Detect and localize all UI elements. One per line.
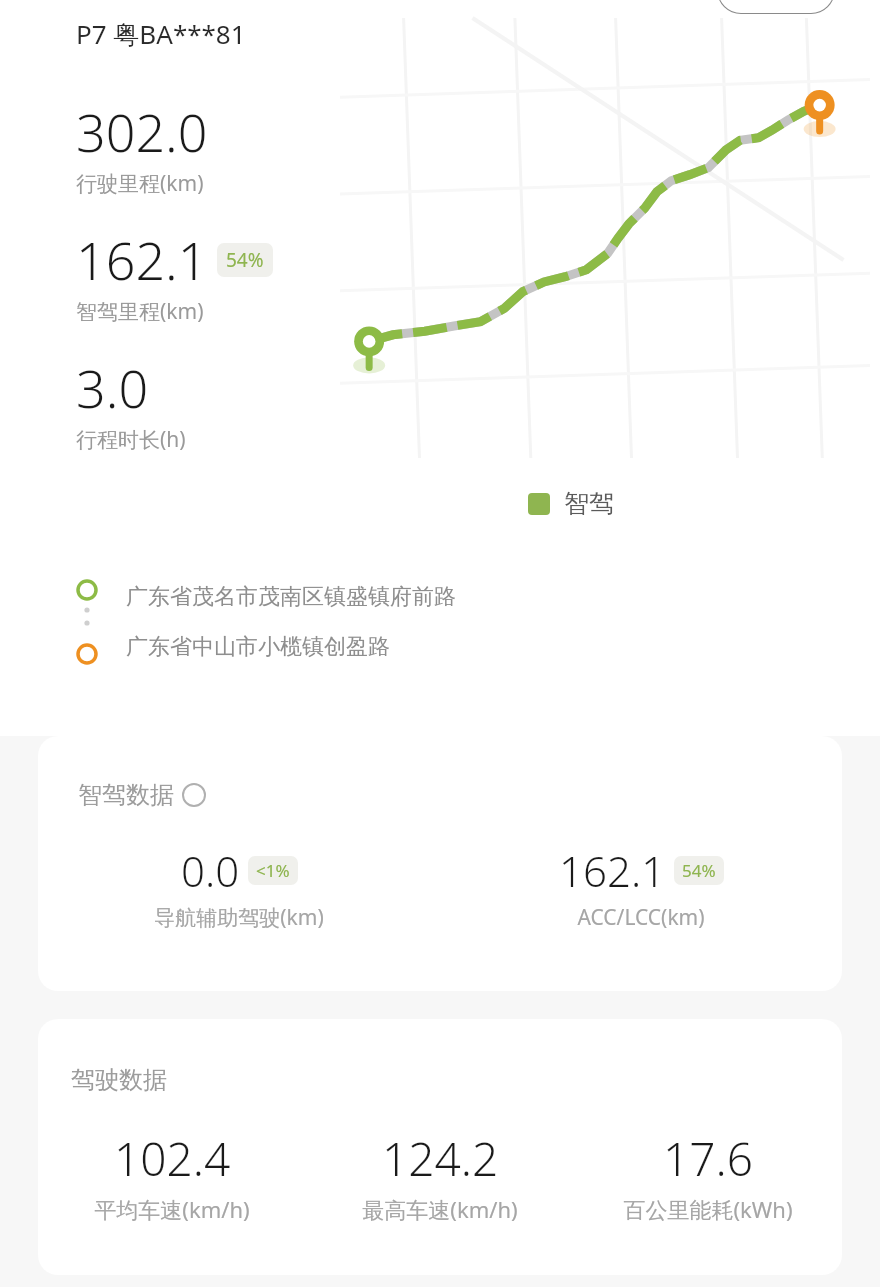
- staticText: 广东省茂名市茂南区镇盛镇府前路: [126, 583, 456, 611]
- button[interactable]: 智驾数据: [38, 736, 842, 991]
- button[interactable]: 驾驶数据: [38, 1019, 842, 1275]
- staticText: 124.2: [382, 1127, 499, 1190]
- staticText: 302.0: [76, 96, 208, 167]
- staticText: 百公里能耗(kWh): [623, 1194, 793, 1224]
- staticText: <1%: [256, 859, 290, 882]
- staticText: 平均车速(km/h): [94, 1194, 250, 1224]
- staticText: 驾驶数据: [71, 1065, 167, 1095]
- staticText: P7 粤BA***81: [76, 16, 246, 52]
- staticText: 162.1: [559, 842, 666, 899]
- staticText: 智驾数据: [78, 780, 174, 810]
- staticText: 3.0: [76, 352, 149, 423]
- staticText: 智驾: [564, 488, 614, 519]
- staticText: 54%: [226, 247, 264, 273]
- staticText: 行驶里程(km): [76, 169, 204, 198]
- staticText: 最高车速(km/h): [362, 1194, 518, 1224]
- staticText: 智驾里程(km): [76, 297, 204, 326]
- staticText: 54%: [682, 859, 716, 882]
- staticText: 0.0: [181, 842, 240, 899]
- staticText: 17.6: [663, 1127, 754, 1190]
- staticText: 162.1: [76, 224, 208, 295]
- staticText: 102.4: [114, 1127, 231, 1190]
- staticText: ACC/LCC(km): [577, 903, 705, 932]
- staticText: 导航辅助驾驶(km): [154, 903, 324, 932]
- staticText: 广东省中山市小榄镇创盈路: [126, 633, 390, 661]
- staticText: 行程时长(h): [76, 425, 186, 454]
- button[interactable]: More: [717, 0, 835, 14]
